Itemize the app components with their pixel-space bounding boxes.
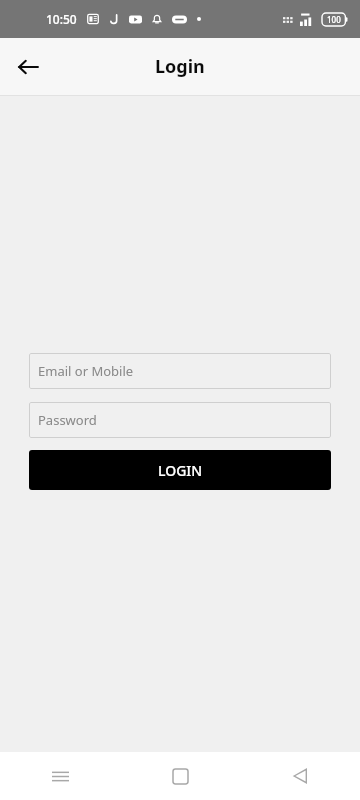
- button[interactable]: Recent apps: [0, 752, 120, 800]
- staticText: 100: [327, 14, 341, 25]
- staticText: 10:50: [46, 11, 77, 27]
- staticText: LOGIN: [158, 461, 203, 480]
- button[interactable]: Password: [29, 402, 331, 438]
- staticText: Email or Mobile: [38, 362, 134, 380]
- staticText: Login: [155, 54, 205, 79]
- button[interactable]: Back: [8, 47, 48, 87]
- button[interactable]: Back: [240, 752, 360, 800]
- button[interactable]: LOGIN: [29, 450, 331, 490]
- staticText: Password: [38, 411, 97, 429]
- button[interactable]: Email or Mobile: [29, 353, 331, 389]
- button[interactable]: Home: [120, 752, 240, 800]
